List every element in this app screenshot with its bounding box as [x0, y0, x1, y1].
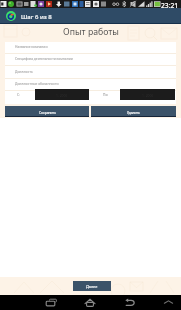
button[interactable]: Далее [73, 281, 111, 291]
button[interactable]: Должность [5, 67, 176, 79]
button[interactable]: Home [78, 295, 104, 310]
staticText: 23:21 [161, 1, 179, 9]
staticText: Должностные обязанности [15, 81, 59, 85]
staticText: Специфика деятельности компании [15, 56, 73, 60]
button[interactable]: Сохранить [5, 106, 89, 117]
button[interactable]: Специфика деятельности компании [5, 54, 176, 66]
staticText: Шаг 6 из 8 [21, 12, 52, 20]
button[interactable]: Удалить [91, 106, 176, 117]
button[interactable]: Recents [38, 295, 64, 310]
staticText: Далее [86, 284, 98, 289]
staticText: Название компании [15, 44, 48, 48]
button[interactable]: Название компании [5, 42, 176, 54]
button[interactable]: Back [118, 295, 144, 310]
button[interactable]: Должностные обязанности [5, 79, 176, 91]
staticText: По: [103, 92, 109, 96]
staticText: Удалить [127, 110, 140, 114]
staticText: Сохранить [39, 110, 56, 114]
staticText: Должность [15, 69, 33, 73]
staticText: Опыт работы [63, 26, 119, 38]
staticText: С: [17, 92, 20, 96]
button[interactable]: Hide keyboard [156, 295, 181, 310]
